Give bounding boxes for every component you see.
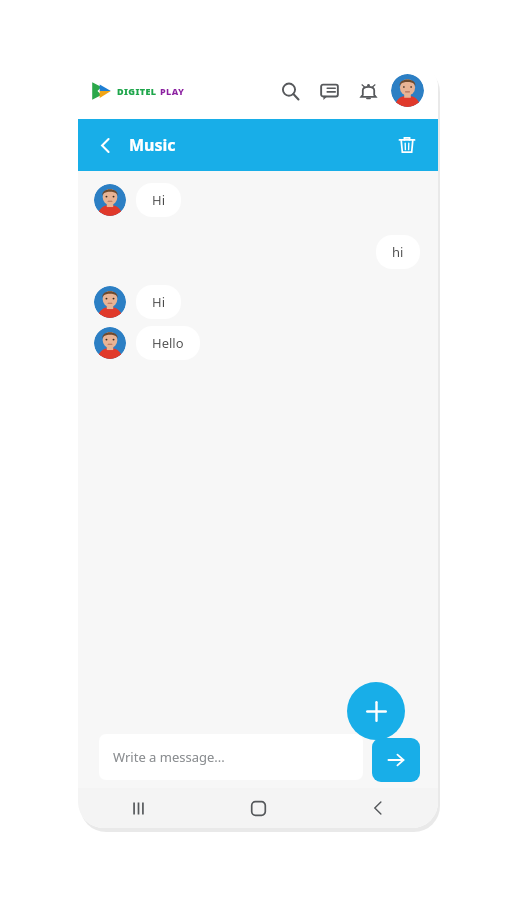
button[interactable]: DIGITEL	[90, 80, 185, 102]
button[interactable]: Recents	[78, 788, 198, 828]
button[interactable]: Hello	[78, 326, 438, 360]
button[interactable]: New message	[347, 682, 405, 740]
button[interactable]: Delete	[390, 128, 424, 162]
button[interactable]: Back	[318, 788, 438, 828]
staticText: Write a message...	[113, 748, 225, 766]
button[interactable]: Profile	[391, 74, 424, 107]
button[interactable]: Hi	[78, 285, 438, 319]
staticText: Hello	[152, 334, 184, 352]
button[interactable]: Write a message...	[99, 734, 363, 780]
staticText: Hi	[152, 293, 165, 311]
staticText: Music	[129, 134, 176, 156]
button[interactable]: Notifications	[353, 76, 383, 106]
button[interactable]: Send	[372, 738, 420, 782]
button[interactable]: Search	[275, 76, 305, 106]
staticText: DIGITEL	[117, 85, 157, 97]
button[interactable]: Home	[198, 788, 318, 828]
button[interactable]: Messages	[314, 76, 344, 106]
staticText: Hi	[152, 191, 165, 209]
button[interactable]: Hi	[78, 183, 438, 217]
staticText: PLAY	[160, 85, 185, 97]
button[interactable]: hi	[78, 235, 438, 269]
staticText: hi	[392, 243, 404, 261]
button[interactable]: Back	[88, 128, 122, 162]
